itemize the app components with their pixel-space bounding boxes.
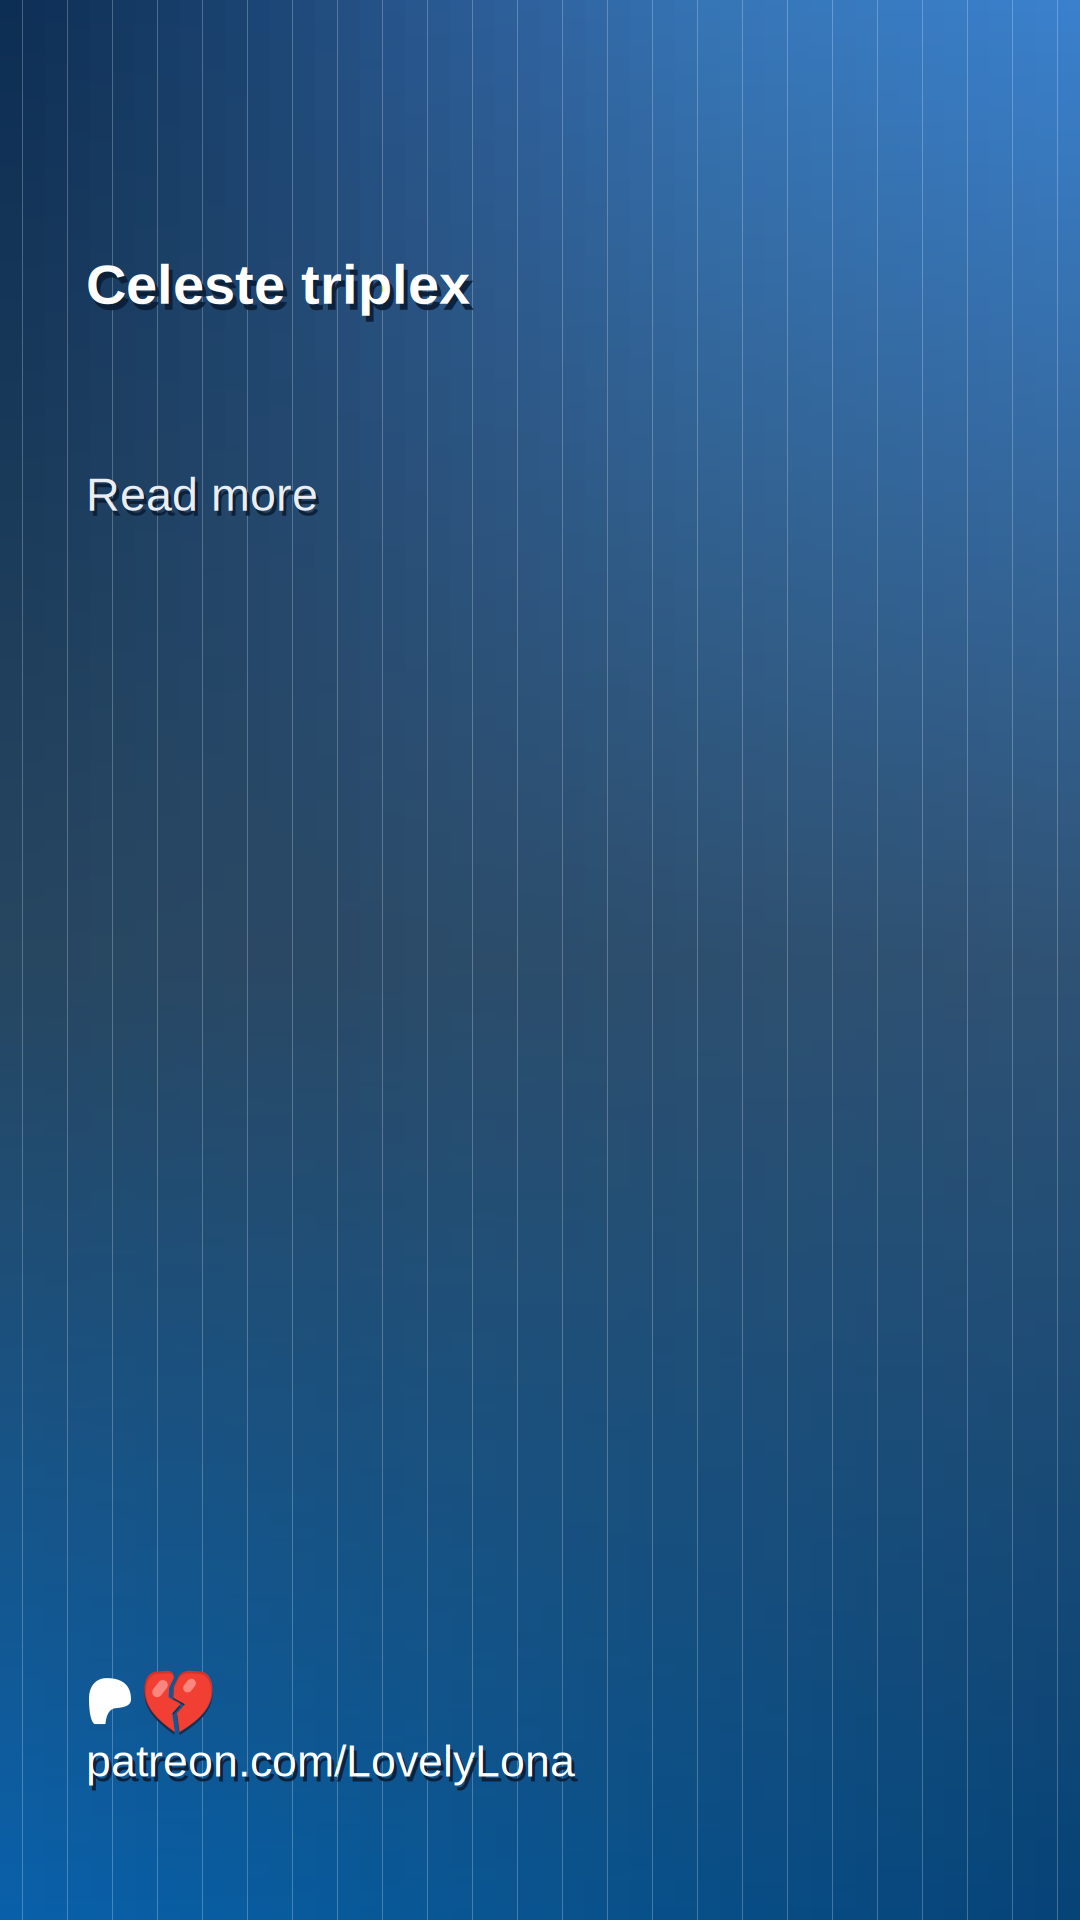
- button[interactable]: patreon.com/LovelyLona: [86, 1672, 575, 1786]
- button[interactable]: Read more: [86, 316, 318, 521]
- staticText: Read more: [86, 469, 318, 521]
- staticText: patreon.com/LovelyLona: [86, 1736, 575, 1786]
- staticText: Celeste triplex: [86, 253, 470, 316]
- staticText: patreon.com/LovelyLona: [89, 1741, 578, 1791]
- staticText: Read more: [89, 474, 321, 526]
- staticText: Celeste triplex: [90, 259, 474, 322]
